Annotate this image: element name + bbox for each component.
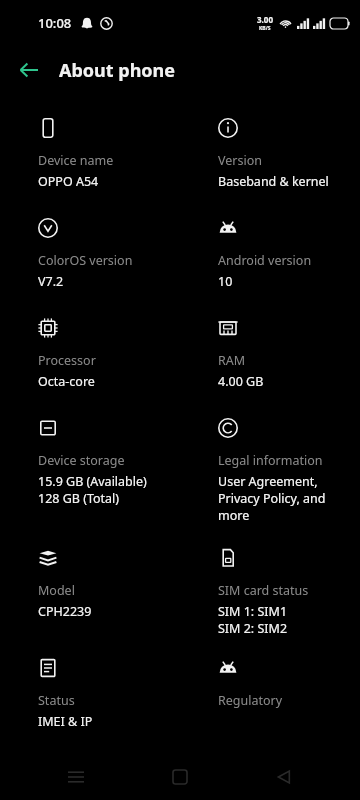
staticText: OPPO A54: [38, 173, 99, 190]
staticText: SIM card status: [218, 582, 309, 599]
staticText: Model: [38, 582, 75, 599]
staticText: Regulatory: [218, 692, 283, 709]
staticText: Device name: [38, 152, 114, 169]
staticText: Privacy Policy, and: [218, 490, 326, 507]
staticText: SIM 2: SIM2: [218, 620, 288, 637]
button[interactable]: SIM card status: [180, 536, 360, 646]
staticText: Status: [38, 692, 75, 709]
button[interactable]: Recents: [48, 754, 104, 800]
staticText: Device storage: [38, 452, 125, 469]
staticText: 128 GB (Total): [38, 490, 120, 507]
button[interactable]: Legal information: [180, 406, 360, 536]
button[interactable]: Android version: [180, 206, 360, 306]
staticText: Processor: [38, 352, 96, 369]
staticText: IMEI & IP: [38, 713, 93, 730]
button[interactable]: Device storage: [0, 406, 180, 536]
button[interactable]: Status: [0, 646, 180, 746]
staticText: Android version: [218, 252, 312, 269]
staticText: Version: [218, 152, 262, 169]
staticText: 10: [218, 273, 233, 290]
staticText: Octa-core: [38, 373, 95, 390]
staticText: 10:08: [38, 14, 72, 32]
button[interactable]: Back: [10, 51, 48, 89]
button[interactable]: Regulatory: [180, 646, 360, 746]
staticText: SIM 1: SIM1: [218, 603, 288, 620]
button[interactable]: Model: [0, 536, 180, 646]
staticText: CPH2239: [38, 603, 92, 620]
staticText: 15.9 GB (Available): [38, 473, 147, 490]
button[interactable]: Back: [256, 754, 312, 800]
button[interactable]: Version: [180, 106, 360, 206]
button[interactable]: Processor: [0, 306, 180, 406]
staticText: V7.2: [38, 273, 64, 290]
button[interactable]: ColorOS version: [0, 206, 180, 306]
staticText: ColorOS version: [38, 252, 133, 269]
staticText: 3.00: [257, 14, 273, 25]
staticText: 4.00 GB: [218, 373, 264, 390]
staticText: User Agreement,: [218, 473, 318, 490]
button[interactable]: Home: [152, 754, 208, 800]
staticText: Baseband & kernel: [218, 173, 329, 190]
staticText: Legal information: [218, 452, 323, 469]
button[interactable]: Device name: [0, 106, 180, 206]
staticText: KB/S: [259, 25, 271, 32]
button[interactable]: RAM: [180, 306, 360, 406]
staticText: RAM: [218, 352, 246, 369]
staticText: About phone: [59, 58, 176, 83]
staticText: more: [218, 507, 250, 524]
